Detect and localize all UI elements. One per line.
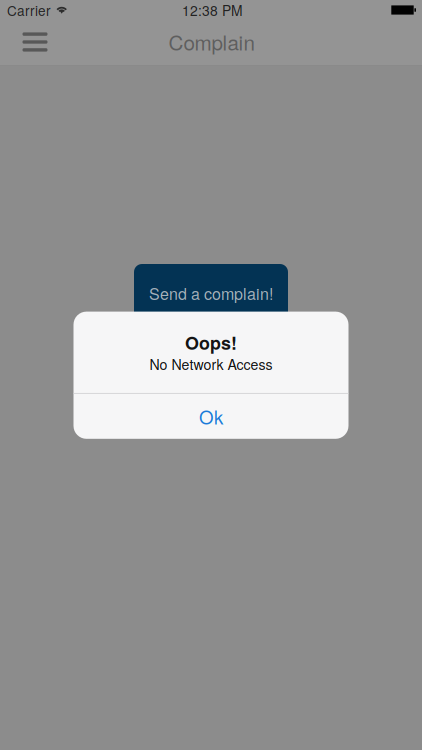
staticText: No Network Access	[149, 354, 272, 374]
staticText: Ok	[199, 403, 223, 430]
staticText: 12:38 PM	[182, 0, 243, 20]
button[interactable]: Menu	[13, 22, 57, 64]
staticText: Complain	[168, 27, 254, 56]
staticText: Send a complain!	[149, 281, 273, 304]
button[interactable]: Send a complain!	[134, 264, 288, 322]
staticText: Oops!	[185, 330, 237, 355]
button[interactable]: Ok	[73, 394, 348, 439]
staticText: Carrier	[7, 0, 51, 20]
